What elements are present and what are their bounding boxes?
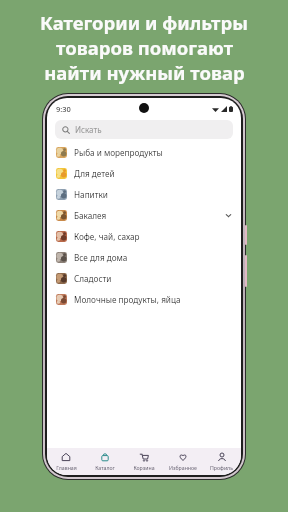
- staticText: Избранное: [169, 464, 197, 471]
- button[interactable]: Корзина: [124, 448, 163, 475]
- button[interactable]: Искать: [55, 120, 233, 139]
- button[interactable]: Молочные продукты, яйца: [47, 289, 241, 310]
- staticText: найти нужный товар: [44, 60, 245, 85]
- button[interactable]: Рыба и морепродукты: [47, 142, 241, 163]
- staticText: Напитки: [74, 189, 108, 200]
- staticText: Бакалея: [74, 210, 107, 221]
- staticText: Корзина: [133, 464, 155, 471]
- staticText: Каталог: [95, 464, 115, 471]
- button[interactable]: Избранное: [163, 448, 202, 475]
- button[interactable]: Бакалея: [47, 205, 241, 226]
- button[interactable]: Кофе, чай, сахар: [47, 226, 241, 247]
- button[interactable]: Напитки: [47, 184, 241, 205]
- button[interactable]: Каталог: [85, 448, 124, 475]
- staticText: Молочные продукты, яйца: [74, 294, 181, 305]
- staticText: товаров помогают: [56, 35, 233, 60]
- button[interactable]: Сладости: [47, 268, 241, 289]
- staticText: Главная: [56, 464, 77, 471]
- staticText: Рыба и морепродукты: [74, 147, 163, 158]
- button[interactable]: Для детей: [47, 163, 241, 184]
- staticText: Профиль: [210, 464, 233, 471]
- button[interactable]: Все для дома: [47, 247, 241, 268]
- button[interactable]: Главная: [47, 448, 85, 475]
- staticText: Сладости: [74, 273, 112, 284]
- staticText: Искать: [75, 124, 102, 135]
- staticText: Все для дома: [74, 252, 128, 263]
- staticText: Для детей: [74, 168, 115, 179]
- button[interactable]: Профиль: [202, 448, 241, 475]
- staticText: 9:30: [56, 104, 71, 114]
- staticText: Кофе, чай, сахар: [74, 231, 140, 242]
- staticText: Категории и фильтры: [40, 10, 248, 35]
